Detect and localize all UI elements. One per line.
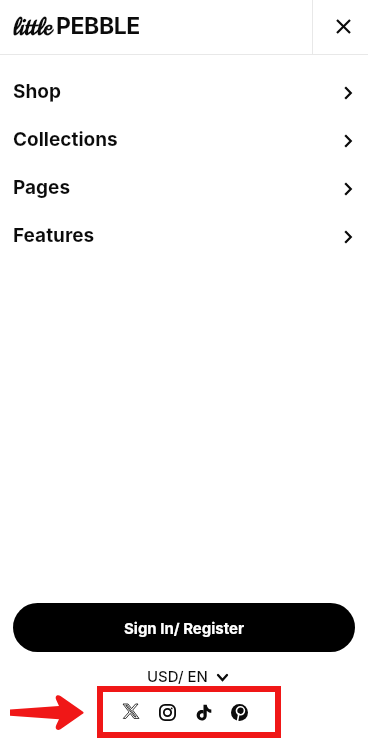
button[interactable]: Collections (0, 115, 368, 163)
button[interactable]: Close menu (313, 0, 368, 54)
button[interactable]: TikTok (190, 699, 216, 725)
staticText: Pages (13, 176, 71, 199)
button[interactable]: Shop (0, 67, 368, 115)
button[interactable]: Pages (0, 163, 368, 211)
staticText: USD/ EN (147, 667, 208, 685)
button[interactable]: X (Twitter) (118, 699, 144, 725)
button[interactable]: USD/ EN (143, 664, 232, 688)
staticText: Collections (13, 128, 118, 151)
staticText: little (13, 11, 53, 43)
button[interactable]: little (0, 0, 312, 54)
staticText: Sign In/ Register (124, 619, 245, 637)
staticText: PEBBLE (56, 12, 140, 40)
staticText: Shop (13, 80, 61, 103)
button[interactable]: Features (0, 211, 368, 259)
button[interactable]: Pinterest (226, 699, 252, 725)
button[interactable]: Instagram (154, 699, 180, 725)
button[interactable]: Sign In/ Register (13, 603, 355, 652)
staticText: Features (13, 224, 95, 247)
